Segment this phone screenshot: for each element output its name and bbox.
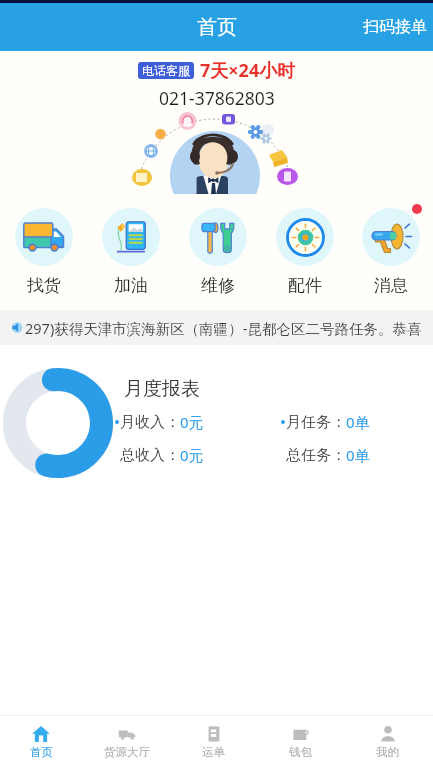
other: 货源大厅 — [118, 725, 136, 743]
other: 运单 — [205, 725, 223, 743]
staticText: 电话客服 — [142, 63, 190, 78]
other: 首页 — [32, 725, 50, 743]
button[interactable]: 扫码接单 — [351, 7, 433, 47]
staticText: 021-37862803 — [159, 86, 275, 110]
staticText: 货源大厅 — [104, 745, 150, 759]
staticText: 7天×24小时 — [200, 58, 296, 83]
staticText: 配件 — [288, 275, 322, 296]
button[interactable]: 配件 — [261, 208, 348, 296]
staticText: 总任务： — [286, 446, 346, 465]
staticText: 扫码接单 — [363, 17, 427, 37]
button[interactable]: 钱包 — [257, 716, 344, 762]
staticText: 0元 — [180, 412, 204, 432]
staticText: 0单 — [346, 445, 370, 465]
staticText: 月度报表 — [124, 377, 200, 401]
button[interactable]: 加油 — [87, 208, 174, 296]
other: 钱包 — [292, 725, 310, 743]
button[interactable]: 运单 — [170, 716, 257, 762]
staticText: 找货 — [27, 275, 61, 296]
button[interactable]: 我的 — [344, 716, 431, 762]
staticText: 月收入： — [120, 413, 180, 432]
staticText: 首页 — [197, 15, 237, 40]
staticText: 加油 — [114, 275, 148, 296]
staticText: 我的 — [376, 745, 399, 759]
other: 我的 — [379, 725, 397, 743]
button[interactable]: 维修 — [174, 208, 261, 296]
staticText: 0元 — [180, 445, 204, 465]
button[interactable]: 货源大厅 — [84, 716, 170, 762]
staticText: 钱包 — [289, 745, 312, 759]
staticText: 维修 — [201, 275, 235, 296]
staticText: 运单 — [202, 745, 225, 759]
button[interactable]: 消息 — [348, 208, 433, 296]
staticText: 首页 — [30, 745, 53, 759]
staticText: 297)获得天津市滨海新区（南疆）-昆都仑区二号路任务。恭喜李师 — [25, 318, 427, 338]
staticText: 总收入： — [120, 446, 180, 465]
staticText: 消息 — [374, 275, 408, 296]
staticText: 0单 — [346, 412, 370, 432]
staticText: 月任务： — [286, 413, 346, 432]
button[interactable]: 找货 — [0, 208, 87, 296]
button[interactable]: 297)获得天津市滨海新区（南疆）-昆都仑区二号路任务。恭喜李师 — [0, 310, 433, 345]
button[interactable]: 首页 — [0, 716, 84, 762]
